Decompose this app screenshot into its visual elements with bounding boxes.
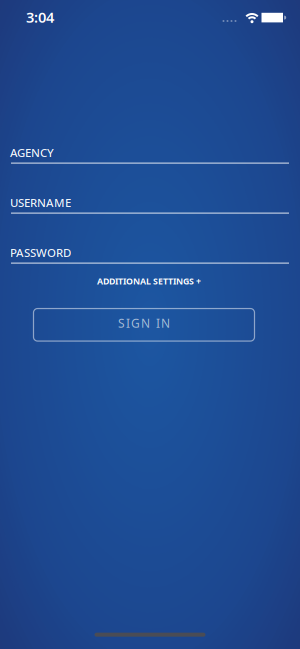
button[interactable]: S [33, 309, 254, 341]
staticText: G [131, 315, 140, 331]
staticText: ADDITIONAL SETTINGS + [97, 275, 201, 287]
staticText: S [118, 315, 125, 331]
staticText: PASSWORD [10, 245, 71, 260]
staticText: N [141, 315, 150, 331]
button[interactable]: USERNAME [11, 197, 289, 214]
staticText: 3:04 [26, 7, 54, 27]
staticText: N [161, 315, 170, 331]
button[interactable]: PASSWORD [11, 247, 289, 264]
staticText: I [156, 315, 160, 331]
staticText: USERNAME [10, 195, 71, 210]
staticText: AGENCY [10, 145, 54, 160]
button[interactable]: AGENCY [11, 147, 289, 164]
staticText: I [126, 315, 130, 331]
button[interactable]: ADDITIONAL SETTINGS + [97, 275, 201, 287]
